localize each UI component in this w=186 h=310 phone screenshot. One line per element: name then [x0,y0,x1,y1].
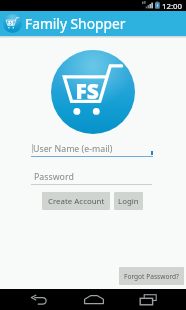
staticText: Forgot Password? [124,272,179,281]
staticText: 12:00 [162,1,182,12]
button[interactable]: Create Account [42,192,110,210]
button[interactable]: User Name (e-mail) [31,142,153,157]
button[interactable]: Recent apps [129,289,169,310]
button[interactable]: Forgot Password? [119,267,184,285]
button[interactable]: Password [31,170,152,185]
button[interactable]: Home [74,289,114,310]
staticText: Family Shopper [25,14,126,33]
staticText: Password [34,171,74,183]
button[interactable]: Login [114,192,143,210]
staticText: User Name (e-mail) [33,143,113,155]
staticText: Login [118,196,139,207]
staticText: Create Account [48,196,105,207]
button[interactable]: Back [19,289,59,310]
